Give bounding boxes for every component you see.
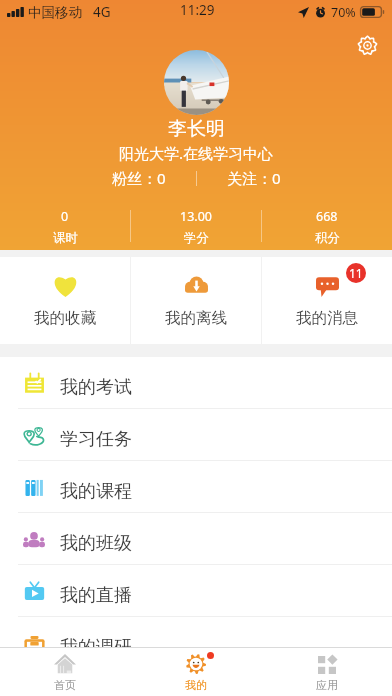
button[interactable]: 我的收藏 bbox=[0, 257, 130, 344]
button[interactable]: 我的离线 bbox=[131, 257, 261, 344]
button[interactable] bbox=[164, 50, 229, 115]
button[interactable]: 学习任务 bbox=[0, 409, 392, 460]
button[interactable]: 0 bbox=[0, 208, 130, 244]
staticText: 4G bbox=[93, 3, 111, 21]
staticText: 我的班级 bbox=[60, 532, 132, 555]
button[interactable]: 我的班级 bbox=[0, 513, 392, 564]
staticText: 李长明 bbox=[168, 117, 225, 141]
staticText: 阳光大学.在线学习中心 bbox=[119, 143, 274, 163]
button[interactable]: 我的 bbox=[130, 648, 261, 696]
staticText: 我的收藏 bbox=[34, 308, 96, 328]
staticText: 首页 bbox=[54, 678, 76, 692]
staticText: 我的 bbox=[185, 678, 207, 692]
staticText: 中国移动 bbox=[28, 4, 82, 21]
staticText: 关注：0 bbox=[227, 168, 281, 188]
button[interactable]: 11 bbox=[262, 257, 392, 344]
staticText: 我的调研 bbox=[60, 636, 132, 659]
button[interactable]: 首页 bbox=[0, 648, 130, 696]
button[interactable]: 13.00 bbox=[131, 208, 261, 244]
staticText: 13.00 bbox=[180, 208, 212, 225]
staticText: 应用 bbox=[316, 678, 338, 692]
staticText: 学分 bbox=[184, 230, 209, 244]
staticText: 我的消息 bbox=[296, 308, 358, 328]
staticText: 我的直播 bbox=[60, 584, 132, 607]
button[interactable]: 应用 bbox=[261, 648, 392, 696]
staticText: 我的课程 bbox=[60, 480, 132, 503]
staticText: 11 bbox=[349, 265, 363, 281]
staticText: 我的离线 bbox=[165, 308, 227, 328]
button[interactable]: 668 bbox=[262, 208, 392, 244]
button[interactable]: 我的考试 bbox=[0, 357, 392, 408]
staticText: 70% bbox=[331, 4, 356, 21]
staticText: 粉丝：0 bbox=[112, 168, 166, 188]
button[interactable]: 我的课程 bbox=[0, 461, 392, 512]
button[interactable]: 我的调研 bbox=[0, 617, 392, 668]
staticText: 11:29 bbox=[180, 1, 215, 19]
staticText: 学习任务 bbox=[60, 428, 132, 451]
staticText: 668 bbox=[316, 208, 338, 225]
staticText: 0 bbox=[61, 208, 69, 225]
button[interactable]: Settings bbox=[350, 28, 384, 62]
staticText: 课时 bbox=[53, 230, 78, 244]
staticText: 积分 bbox=[315, 230, 340, 244]
staticText: 我的考试 bbox=[60, 376, 132, 399]
button[interactable]: 我的直播 bbox=[0, 565, 392, 616]
